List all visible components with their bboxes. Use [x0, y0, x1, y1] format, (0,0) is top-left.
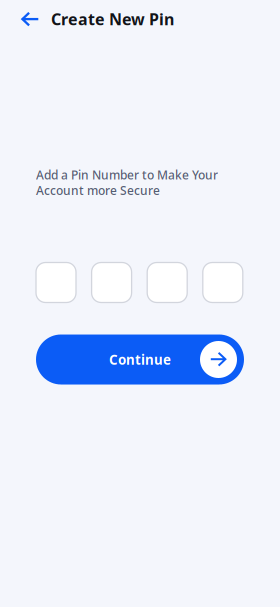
button[interactable]: Continue: [36, 334, 244, 384]
button[interactable]: PIN digit 1: [36, 262, 76, 302]
button[interactable]: PIN digit 3: [147, 262, 187, 302]
staticText: Account more Secure: [36, 182, 160, 198]
staticText: Continue: [109, 351, 171, 368]
button[interactable]: PIN digit 4: [203, 262, 243, 302]
staticText: Create New Pin: [51, 8, 174, 30]
staticText: Add a Pin Number to Make Your: [36, 167, 218, 183]
button[interactable]: Create New Pin: [49, 2, 174, 36]
button[interactable]: Back: [11, 2, 49, 35]
button[interactable]: PIN digit 2: [92, 262, 132, 302]
